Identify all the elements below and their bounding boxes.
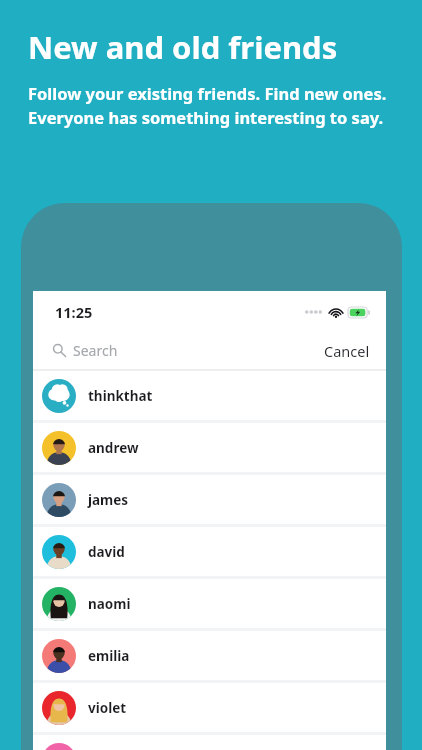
staticText: New and old friends <box>28 26 338 68</box>
staticText: 11:25 <box>55 302 93 322</box>
staticText: emilia <box>88 647 130 665</box>
staticText: Search <box>73 341 118 360</box>
other: Search <box>53 344 66 357</box>
staticText: david <box>88 543 125 561</box>
staticText: naomi <box>88 595 131 613</box>
button[interactable]: james <box>33 475 386 524</box>
staticText: Cancel <box>324 341 370 361</box>
button[interactable]: sophia <box>33 735 386 750</box>
button[interactable]: emilia <box>33 631 386 680</box>
staticText: andrew <box>88 439 139 457</box>
button[interactable]: david <box>33 527 386 576</box>
staticText: thinkthat <box>88 387 153 405</box>
staticText: violet <box>88 699 127 717</box>
button[interactable]: violet <box>33 683 386 732</box>
button[interactable]: Cancel <box>308 335 386 367</box>
staticText: james <box>88 491 129 509</box>
button[interactable]: andrew <box>33 423 386 472</box>
button[interactable]: naomi <box>33 579 386 628</box>
button[interactable]: thinkthat <box>33 371 386 420</box>
staticText: Follow your existing friends. Find new o… <box>28 82 396 129</box>
button[interactable]: Search <box>53 341 118 360</box>
